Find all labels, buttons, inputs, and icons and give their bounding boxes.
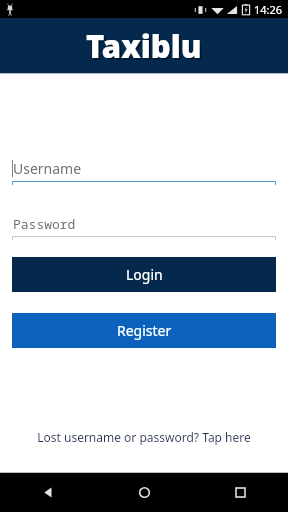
staticText: Register	[117, 321, 172, 340]
staticText: 14:26	[254, 2, 283, 17]
staticText: Password	[13, 215, 76, 233]
button[interactable]: Username	[12, 156, 276, 181]
button[interactable]: Back	[0, 473, 96, 512]
staticText: Taxiblu	[88, 27, 204, 69]
button[interactable]: Recent apps	[192, 473, 288, 512]
staticText: Login	[126, 265, 163, 284]
staticText: Username	[13, 159, 82, 178]
button[interactable]: Lost username or password? Tap here	[0, 424, 288, 450]
button[interactable]: Register	[12, 313, 276, 348]
button[interactable]: Password	[13, 211, 276, 236]
staticText: Lost username or password? Tap here	[37, 429, 251, 445]
staticText: Taxiblu	[86, 25, 202, 67]
button[interactable]: Login	[12, 257, 276, 292]
button[interactable]: Home	[96, 473, 192, 512]
